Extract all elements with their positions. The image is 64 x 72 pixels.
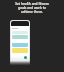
staticText: Today (12, 27, 19, 30)
button[interactable] (12, 43, 28, 47)
button[interactable] (11, 21, 29, 26)
button[interactable]: Add (24, 56, 27, 59)
button[interactable] (12, 48, 28, 53)
button[interactable] (12, 35, 28, 39)
staticText: Set health and fitness goals and work to… (15, 2, 49, 14)
